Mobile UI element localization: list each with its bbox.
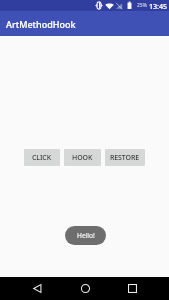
staticText: RESTORE <box>110 153 140 163</box>
button[interactable]: RESTORE <box>105 149 145 166</box>
staticText: Hello! <box>77 231 95 240</box>
button[interactable]: Home <box>73 277 97 300</box>
button[interactable]: Back <box>25 277 49 300</box>
staticText: ArtMethodHook <box>6 18 76 30</box>
staticText: HOOK <box>72 153 93 163</box>
button[interactable]: Recents <box>120 277 144 300</box>
staticText: 13:45 <box>149 1 168 11</box>
button[interactable]: HOOK <box>64 149 101 166</box>
button[interactable]: CLICK <box>24 149 60 166</box>
staticText: CLICK <box>32 153 52 163</box>
staticText: 25% <box>137 2 147 9</box>
